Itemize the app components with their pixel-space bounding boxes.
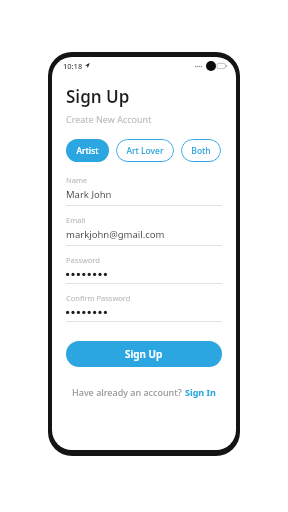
button[interactable]: Password xyxy=(66,255,222,284)
staticText: Art Lover xyxy=(126,145,164,157)
button[interactable]: Sign Up xyxy=(66,341,222,367)
button[interactable]: Confirm Password xyxy=(66,293,222,322)
button[interactable]: Email xyxy=(66,215,222,246)
button[interactable]: Have already an account? xyxy=(52,386,236,398)
staticText: 10:18 xyxy=(63,61,83,71)
staticText: markjohn@gmail.com xyxy=(66,228,165,241)
staticText: Have already an account? xyxy=(72,386,185,398)
staticText: Create New Account xyxy=(66,113,152,125)
staticText: Password xyxy=(66,255,100,265)
button[interactable]: Artist xyxy=(66,139,109,162)
staticText: Sign Up xyxy=(66,85,130,108)
staticText: Name xyxy=(66,175,88,185)
button[interactable]: Name xyxy=(66,175,222,206)
staticText: Email xyxy=(66,215,86,225)
staticText: Mark John xyxy=(66,188,112,201)
staticText: Both xyxy=(191,145,211,157)
staticText: Sign In xyxy=(185,386,216,398)
staticText: Confirm Password xyxy=(66,293,131,303)
staticText: Artist xyxy=(76,145,99,157)
button[interactable]: Art Lover xyxy=(116,139,174,162)
button[interactable]: Both xyxy=(181,139,221,162)
staticText: Sign Up xyxy=(125,347,163,361)
